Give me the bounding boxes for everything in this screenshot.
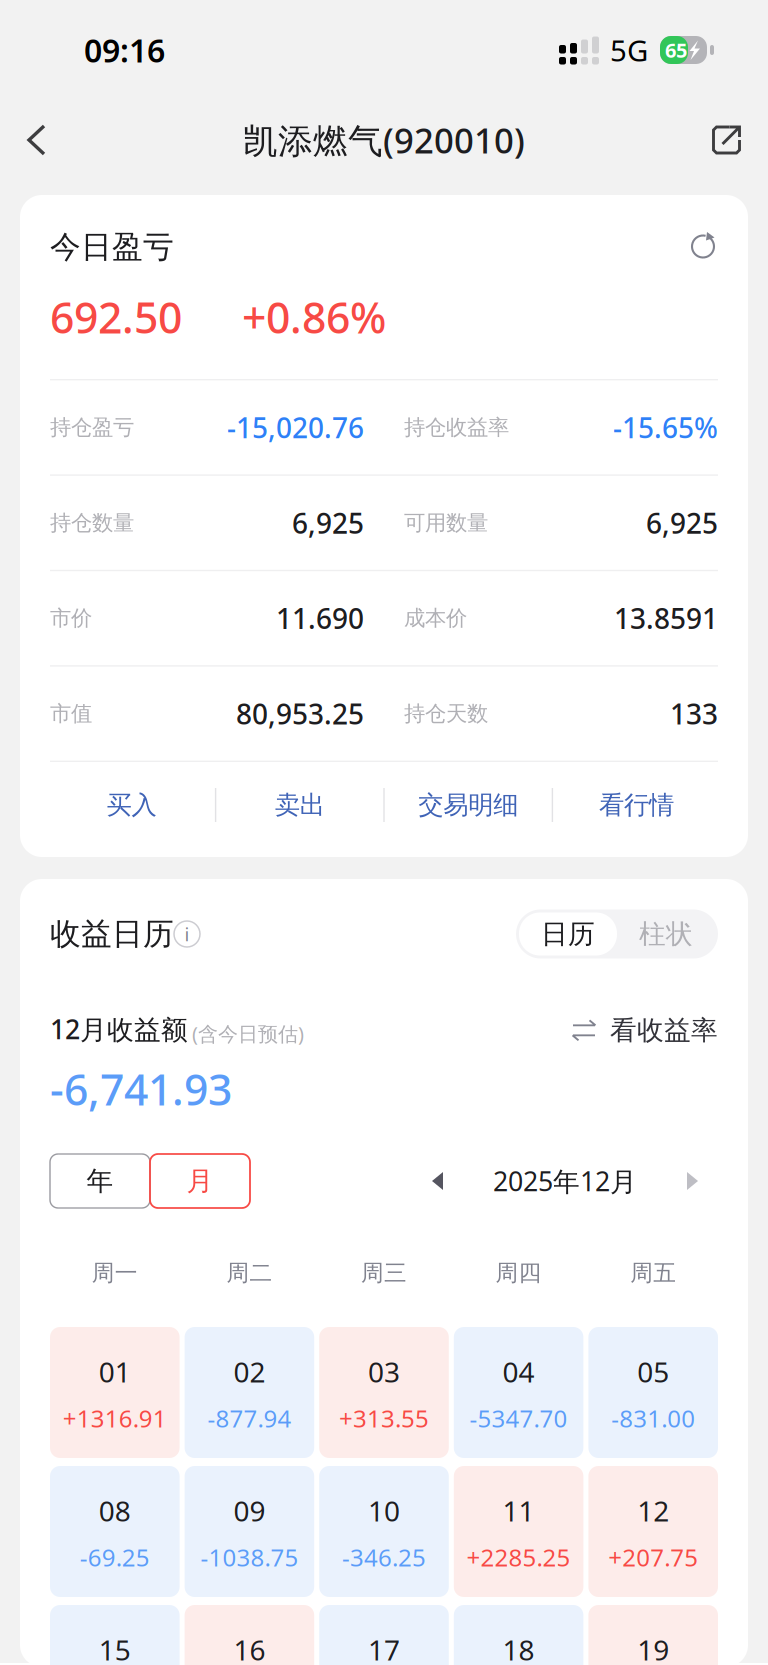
staticText: 买入 (106, 789, 156, 820)
staticText: 692.50 (50, 289, 182, 345)
staticText: 09 (233, 1492, 265, 1529)
staticText: 交易明细 (418, 789, 518, 820)
staticText: 6,925 (292, 504, 364, 541)
button[interactable]: 04 (454, 1327, 583, 1458)
staticText: +1316.91 (63, 1402, 167, 1434)
staticText: 6,925 (646, 504, 718, 541)
button[interactable]: Next month (685, 1170, 700, 1192)
staticText: 11 (503, 1492, 535, 1529)
staticText: 今日盈亏 (50, 228, 174, 266)
button[interactable]: 买入 (48, 762, 215, 848)
staticText: 持仓数量 (50, 510, 134, 536)
staticText: 周三 (361, 1259, 407, 1287)
button[interactable]: 01 (50, 1327, 180, 1458)
button[interactable]: 05 (588, 1327, 718, 1458)
staticText: 市值 (50, 700, 92, 727)
staticText: 5G (610, 30, 648, 69)
staticText: 日历 (541, 918, 595, 950)
staticText: 12 (637, 1492, 669, 1529)
button[interactable]: 12 (588, 1466, 718, 1597)
staticText: 133 (670, 695, 718, 732)
button[interactable]: 08 (50, 1466, 180, 1597)
staticText: -15,020.76 (227, 409, 364, 446)
button[interactable]: Share (680, 102, 742, 178)
button[interactable]: 卖出 (216, 762, 383, 848)
staticText: -877.94 (207, 1402, 291, 1434)
button[interactable]: 看收益率 (571, 1014, 718, 1047)
button[interactable]: 17 (319, 1605, 449, 1665)
staticText: 成本价 (404, 605, 467, 631)
staticText: 柱状 (639, 918, 693, 950)
staticText: 2025年12月 (493, 1163, 637, 1199)
staticText: 17 (368, 1631, 400, 1665)
button[interactable]: Back (26, 102, 88, 178)
staticText: 凯添燃气(920010) (243, 117, 525, 163)
staticText: 15 (99, 1631, 131, 1665)
staticText: 18 (503, 1631, 535, 1665)
staticText: 周四 (496, 1259, 542, 1287)
button[interactable]: 19 (588, 1605, 718, 1665)
staticText: 01 (99, 1353, 131, 1390)
staticText: -6,741.93 (50, 1061, 232, 1117)
button[interactable]: 交易明细 (385, 762, 552, 848)
staticText: 16 (233, 1631, 265, 1665)
staticText: 卖出 (275, 789, 325, 820)
button[interactable]: 02 (185, 1327, 314, 1458)
button[interactable]: 日历 (516, 909, 718, 958)
staticText: 80,953.25 (236, 695, 364, 732)
staticText: 持仓盈亏 (50, 414, 134, 440)
staticText: 市价 (50, 605, 92, 631)
button[interactable]: 18 (454, 1605, 583, 1665)
staticText: 可用数量 (404, 510, 488, 536)
staticText: -346.25 (342, 1541, 426, 1573)
staticText: 08 (99, 1492, 131, 1529)
staticText: 持仓天数 (404, 700, 488, 727)
staticText: +207.75 (608, 1541, 698, 1573)
staticText: -5347.70 (470, 1402, 568, 1434)
staticText: i (184, 922, 189, 946)
staticText: -69.25 (80, 1541, 150, 1573)
staticText: 12月收益额 (50, 1011, 188, 1047)
staticText: 13.8591 (614, 600, 718, 637)
staticText: (含今日预估) (192, 1020, 304, 1047)
staticText: +0.86% (242, 289, 386, 345)
button[interactable]: 10 (319, 1466, 449, 1597)
staticText: 看收益率 (610, 1014, 718, 1047)
staticText: 年 (86, 1165, 113, 1197)
staticText: 看行情 (599, 789, 674, 820)
button[interactable]: 11 (454, 1466, 583, 1597)
staticText: 持仓收益率 (404, 414, 509, 440)
staticText: -1038.75 (200, 1541, 298, 1573)
button[interactable]: 15 (50, 1605, 180, 1665)
staticText: 周二 (226, 1259, 272, 1287)
staticText: -15.65% (613, 409, 718, 446)
staticText: 10 (368, 1492, 400, 1529)
staticText: 02 (233, 1353, 265, 1390)
button[interactable]: 03 (319, 1327, 449, 1458)
staticText: 月 (186, 1165, 213, 1197)
button[interactable]: 16 (185, 1605, 314, 1665)
staticText: 11.690 (276, 600, 364, 637)
staticText: +2285.25 (467, 1541, 571, 1573)
button[interactable]: 看行情 (553, 762, 720, 848)
staticText: 周一 (92, 1259, 138, 1287)
staticText: 09:16 (84, 29, 165, 71)
button[interactable]: Previous month (430, 1170, 445, 1192)
staticText: 03 (368, 1353, 400, 1390)
staticText: 04 (503, 1353, 535, 1390)
staticText: 19 (637, 1631, 669, 1665)
staticText: -831.00 (611, 1402, 695, 1434)
staticText: 05 (637, 1353, 669, 1390)
button[interactable]: Refresh (689, 230, 718, 263)
staticText: +313.55 (339, 1402, 429, 1434)
staticText: 收益日历 (50, 915, 174, 953)
button[interactable]: 09 (185, 1466, 314, 1597)
staticText: 周五 (630, 1259, 676, 1287)
staticText: 65 (665, 37, 687, 63)
